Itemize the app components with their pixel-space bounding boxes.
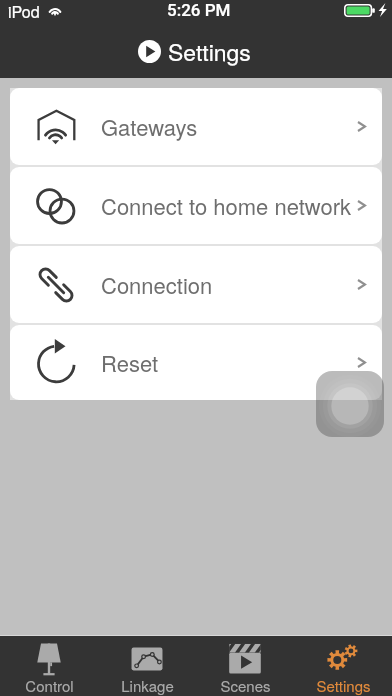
button[interactable]: Linkage (98, 636, 196, 696)
staticText: Gateways (101, 111, 357, 143)
button[interactable]: Connect to home network (10, 167, 382, 244)
button[interactable]: Settings (294, 636, 392, 696)
staticText: Control (25, 675, 74, 696)
button[interactable]: Control (0, 636, 98, 696)
button[interactable]: Assistive Touch (316, 371, 384, 437)
button[interactable]: Gateways (10, 88, 382, 165)
staticText: Connect to home network (101, 190, 357, 222)
staticText: 5:26 PM (167, 0, 231, 20)
staticText: Connection (101, 269, 357, 301)
button[interactable]: Scenes (196, 636, 294, 696)
button[interactable]: Play (138, 40, 161, 63)
staticText: Settings (168, 35, 251, 68)
button[interactable]: Reset (10, 325, 382, 400)
staticText: Linkage (121, 675, 174, 696)
staticText: Settings (316, 675, 371, 696)
button[interactable]: Connection (10, 246, 382, 323)
staticText: Scenes (220, 675, 271, 696)
staticText: Reset (101, 347, 357, 379)
staticText: iPod (8, 0, 40, 20)
